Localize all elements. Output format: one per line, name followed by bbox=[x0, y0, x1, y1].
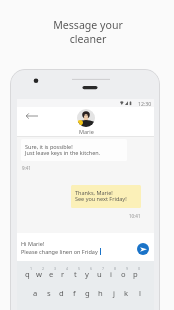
staticText: 12:30 bbox=[138, 100, 152, 107]
button[interactable]: f bbox=[68, 287, 81, 298]
staticText: p bbox=[133, 269, 138, 279]
staticText: r bbox=[61, 269, 65, 279]
staticText: Message your cleaner bbox=[53, 18, 123, 46]
button[interactable]: Back bbox=[23, 108, 41, 124]
staticText: w bbox=[36, 269, 42, 279]
staticText: 4 bbox=[66, 266, 69, 271]
staticText: Thanks, Marie! See you next Friday! bbox=[75, 189, 127, 203]
button[interactable]: u bbox=[93, 268, 105, 279]
staticText: g bbox=[85, 288, 90, 298]
staticText: 1 bbox=[30, 266, 33, 271]
staticText: 3 bbox=[54, 266, 57, 271]
button[interactable]: s bbox=[42, 287, 55, 298]
staticText: 10:41 bbox=[129, 213, 141, 219]
button[interactable]: i bbox=[105, 268, 117, 279]
button[interactable]: e bbox=[45, 268, 57, 279]
button[interactable]: q bbox=[21, 268, 33, 279]
staticText: 8 bbox=[114, 266, 117, 271]
button[interactable]: k bbox=[120, 287, 133, 298]
staticText: Please change linen on Friday bbox=[21, 248, 98, 255]
button[interactable]: Send bbox=[137, 243, 149, 255]
staticText: 9 bbox=[126, 266, 129, 271]
staticText: i bbox=[110, 269, 112, 279]
staticText: Hi Marie! bbox=[21, 240, 45, 247]
button[interactable]: y bbox=[81, 268, 93, 279]
staticText: f bbox=[73, 288, 76, 298]
button[interactable]: t bbox=[69, 268, 81, 279]
staticText: 9:41 bbox=[22, 165, 31, 171]
staticText: l bbox=[139, 288, 141, 298]
staticText: 6 bbox=[90, 266, 93, 271]
button[interactable]: o bbox=[117, 268, 129, 279]
staticText: h bbox=[98, 288, 103, 298]
staticText: u bbox=[97, 269, 102, 279]
button[interactable]: w bbox=[33, 268, 45, 279]
staticText: 5 bbox=[78, 266, 81, 271]
staticText: Sure, it is possible! Just leave keys in… bbox=[25, 143, 101, 157]
button[interactable]: h bbox=[94, 287, 107, 298]
staticText: y bbox=[85, 269, 89, 279]
staticText: t bbox=[74, 269, 77, 279]
staticText: 7 bbox=[102, 266, 105, 271]
staticText: a bbox=[33, 288, 38, 298]
button[interactable]: a bbox=[29, 287, 42, 298]
button[interactable]: l bbox=[133, 287, 146, 298]
staticText: d bbox=[59, 288, 64, 298]
staticText: q bbox=[25, 269, 30, 279]
staticText: 2 bbox=[42, 266, 45, 271]
staticText: j bbox=[113, 288, 115, 298]
staticText: 0 bbox=[138, 266, 141, 271]
staticText: s bbox=[47, 288, 51, 298]
button[interactable]: g bbox=[81, 287, 94, 298]
button[interactable]: d bbox=[55, 287, 68, 298]
staticText: Marie bbox=[79, 128, 94, 135]
staticText: e bbox=[49, 269, 54, 279]
button[interactable]: j bbox=[107, 287, 120, 298]
button[interactable]: p bbox=[129, 268, 141, 279]
staticText: k bbox=[124, 288, 129, 298]
staticText: o bbox=[121, 269, 126, 279]
button[interactable]: r bbox=[57, 268, 69, 279]
